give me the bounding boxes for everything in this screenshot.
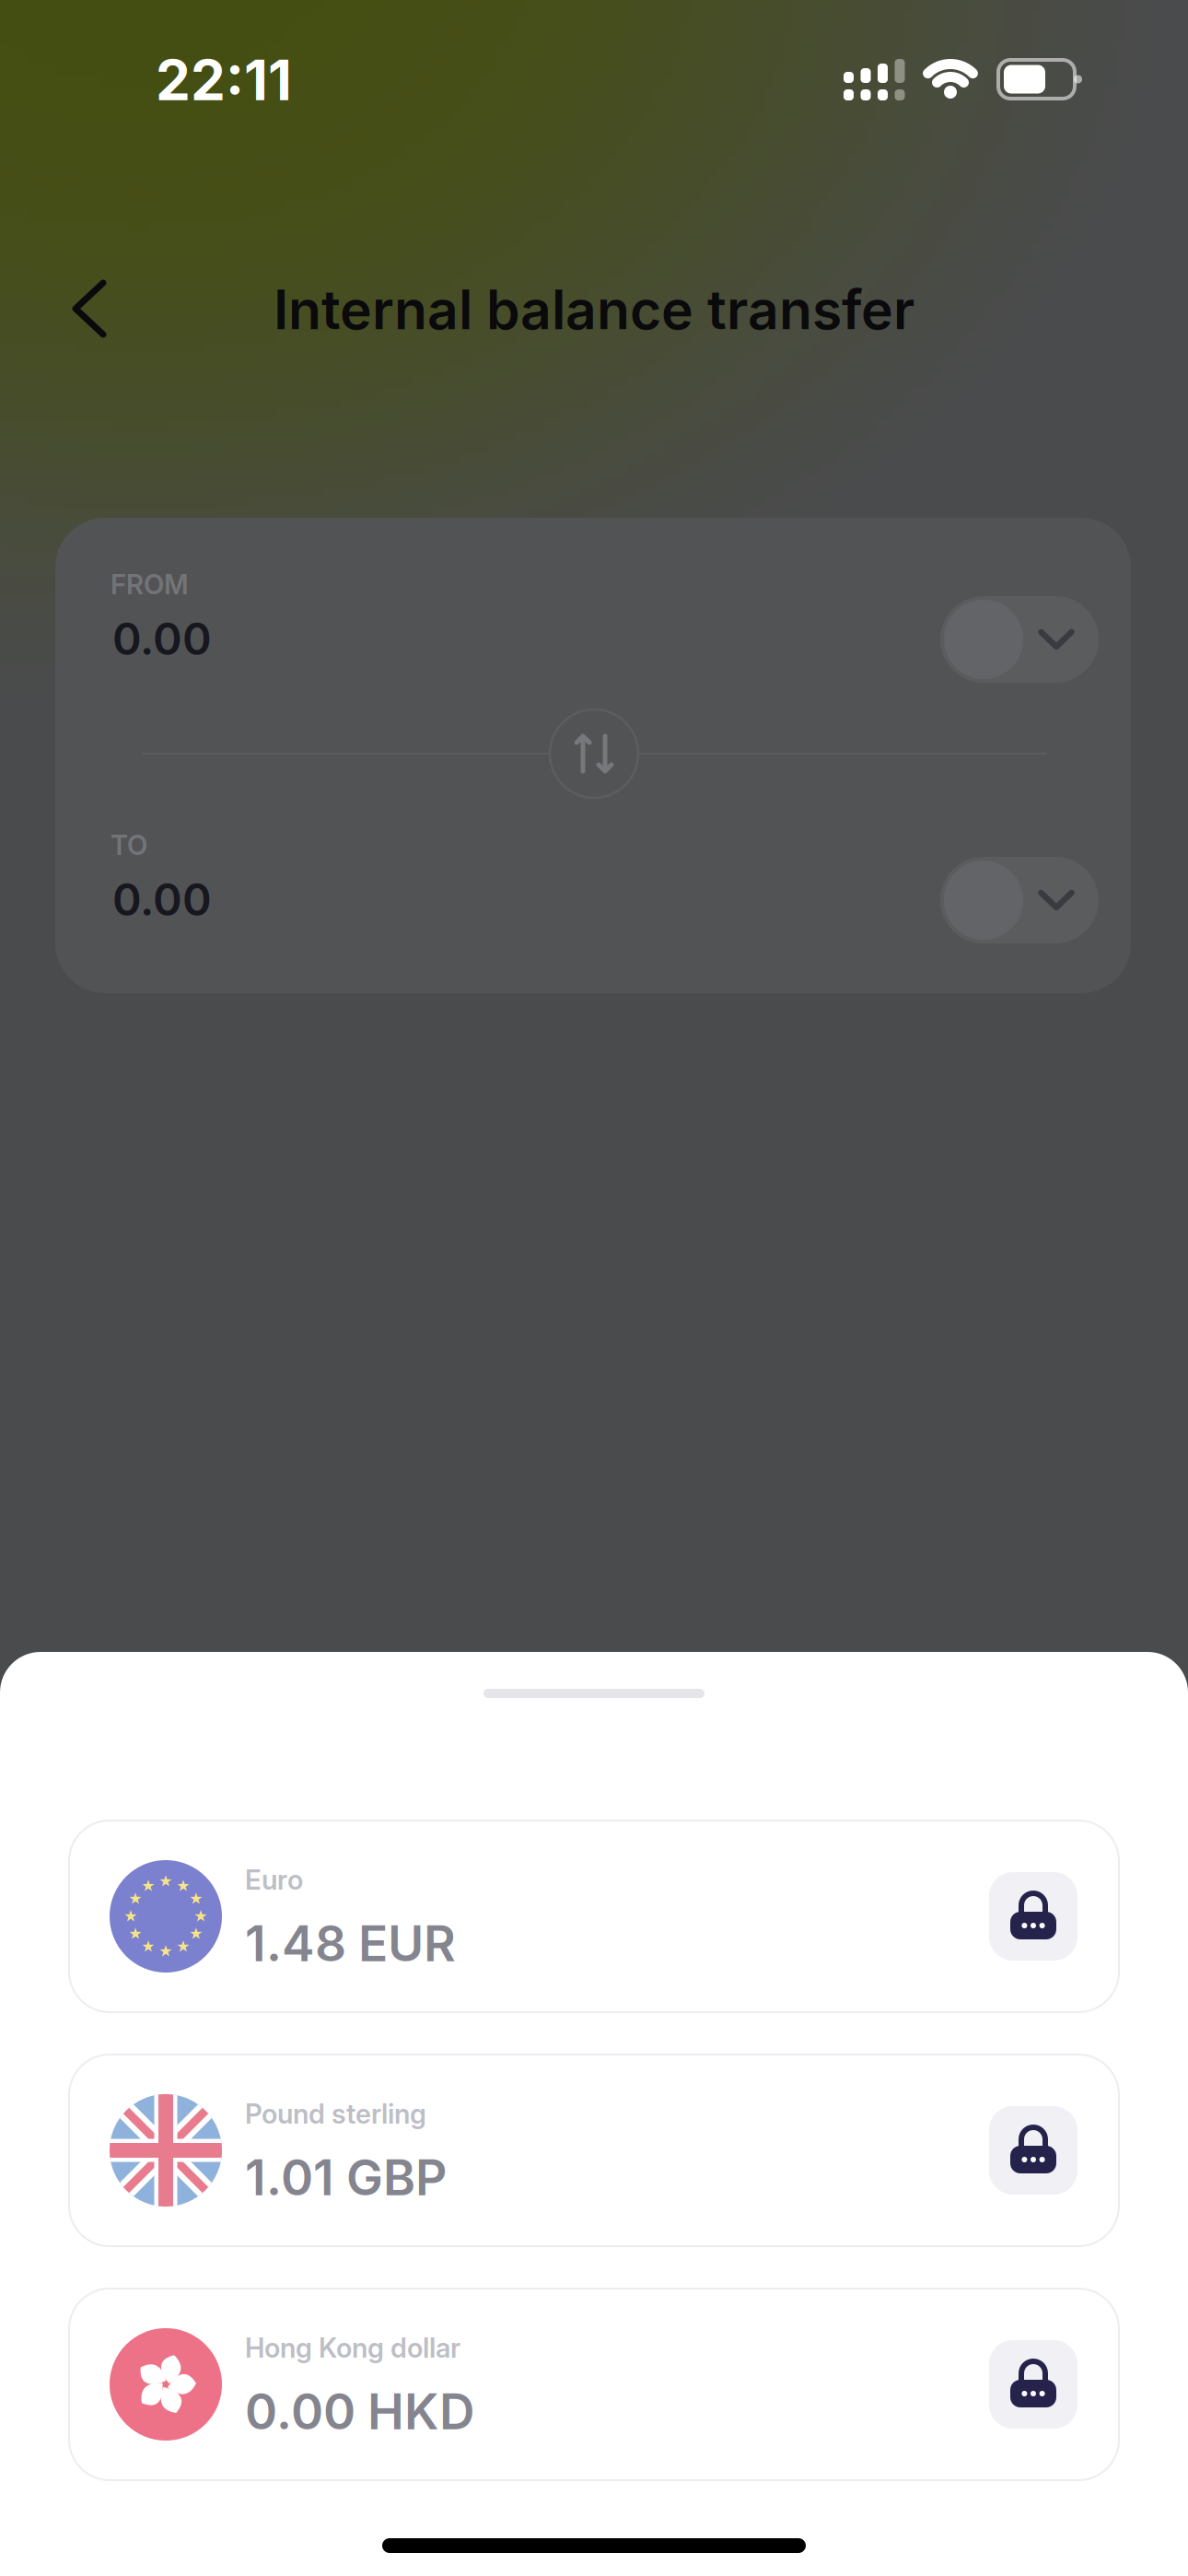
staticText: 1.01 GBP <box>245 2149 447 2206</box>
staticText: Internal balance transfer <box>274 278 914 341</box>
staticText: Hong Kong dollar <box>245 2332 460 2364</box>
button[interactable]: Select source currency <box>940 596 1099 683</box>
staticText: FROM <box>111 568 189 600</box>
staticText: 22:11 <box>156 48 292 113</box>
staticText: 0.00 <box>112 613 212 665</box>
button[interactable]: Back <box>55 263 123 355</box>
staticText: 0.00 HKD <box>245 2383 475 2440</box>
button[interactable]: Pound sterling <box>69 2055 1119 2246</box>
staticText: TO <box>111 829 147 861</box>
button[interactable]: Swap currencies <box>550 709 638 798</box>
staticText: 1.48 EUR <box>245 1914 456 1972</box>
staticText: 0.00 <box>112 873 212 926</box>
staticText: Pound sterling <box>245 2098 426 2130</box>
staticText: Euro <box>245 1864 303 1896</box>
button[interactable]: Hong Kong dollar <box>69 2289 1119 2480</box>
button[interactable]: Euro <box>69 1821 1119 2012</box>
button[interactable]: Select destination currency <box>940 857 1099 943</box>
